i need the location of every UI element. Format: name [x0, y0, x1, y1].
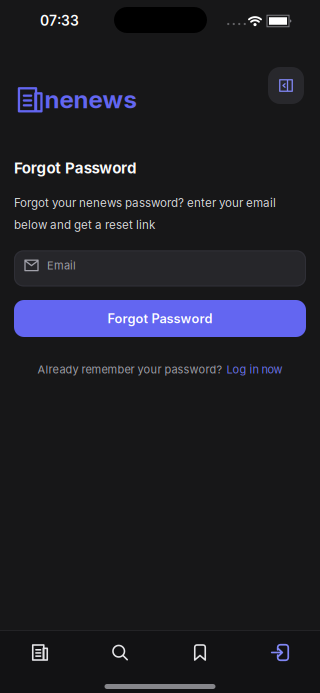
button[interactable]: Search — [80, 630, 160, 674]
button[interactable]: Open sidebar — [268, 67, 304, 104]
staticText: Forgot your nenews password? enter your … — [14, 196, 276, 232]
staticText: Already remember your password? — [37, 363, 222, 376]
button[interactable]: Log in — [240, 630, 320, 674]
button[interactable]: Bookmarks — [160, 630, 240, 674]
staticText: 07:33 — [40, 12, 79, 29]
button[interactable]: Log in now — [226, 363, 282, 376]
staticText: nenews — [44, 85, 136, 114]
button[interactable]: Forgot Password — [14, 300, 306, 337]
staticText: Forgot Password — [14, 159, 137, 177]
staticText: Email — [47, 259, 76, 272]
button[interactable]: News — [0, 630, 80, 674]
staticText: Log in now — [226, 363, 282, 376]
button[interactable]: Email — [14, 250, 306, 286]
staticText: Forgot Password — [107, 311, 212, 326]
